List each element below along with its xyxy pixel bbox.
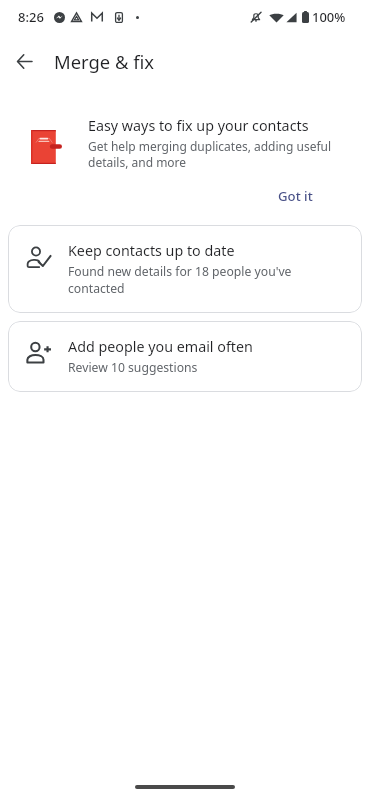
button[interactable]: Navigate up: [5, 42, 43, 80]
staticText: Add people you email often: [68, 337, 253, 356]
staticText: 8:26: [18, 8, 44, 26]
staticText: Review 10 suggestions: [68, 359, 198, 376]
staticText: Easy ways to fix up your contacts: [88, 116, 309, 135]
button[interactable]: Got it: [266, 179, 325, 213]
staticText: Get help merging duplicates, adding usef…: [88, 138, 348, 171]
staticText: Got it: [278, 187, 313, 205]
staticText: Merge & fix: [54, 49, 154, 74]
button[interactable]: Add people you email often: [8, 321, 362, 392]
staticText: Found new details for 18 people you've c…: [68, 263, 310, 297]
button[interactable]: Keep contacts up to date: [8, 225, 362, 313]
staticText: Keep contacts up to date: [68, 241, 235, 260]
staticText: 100%: [312, 8, 346, 26]
